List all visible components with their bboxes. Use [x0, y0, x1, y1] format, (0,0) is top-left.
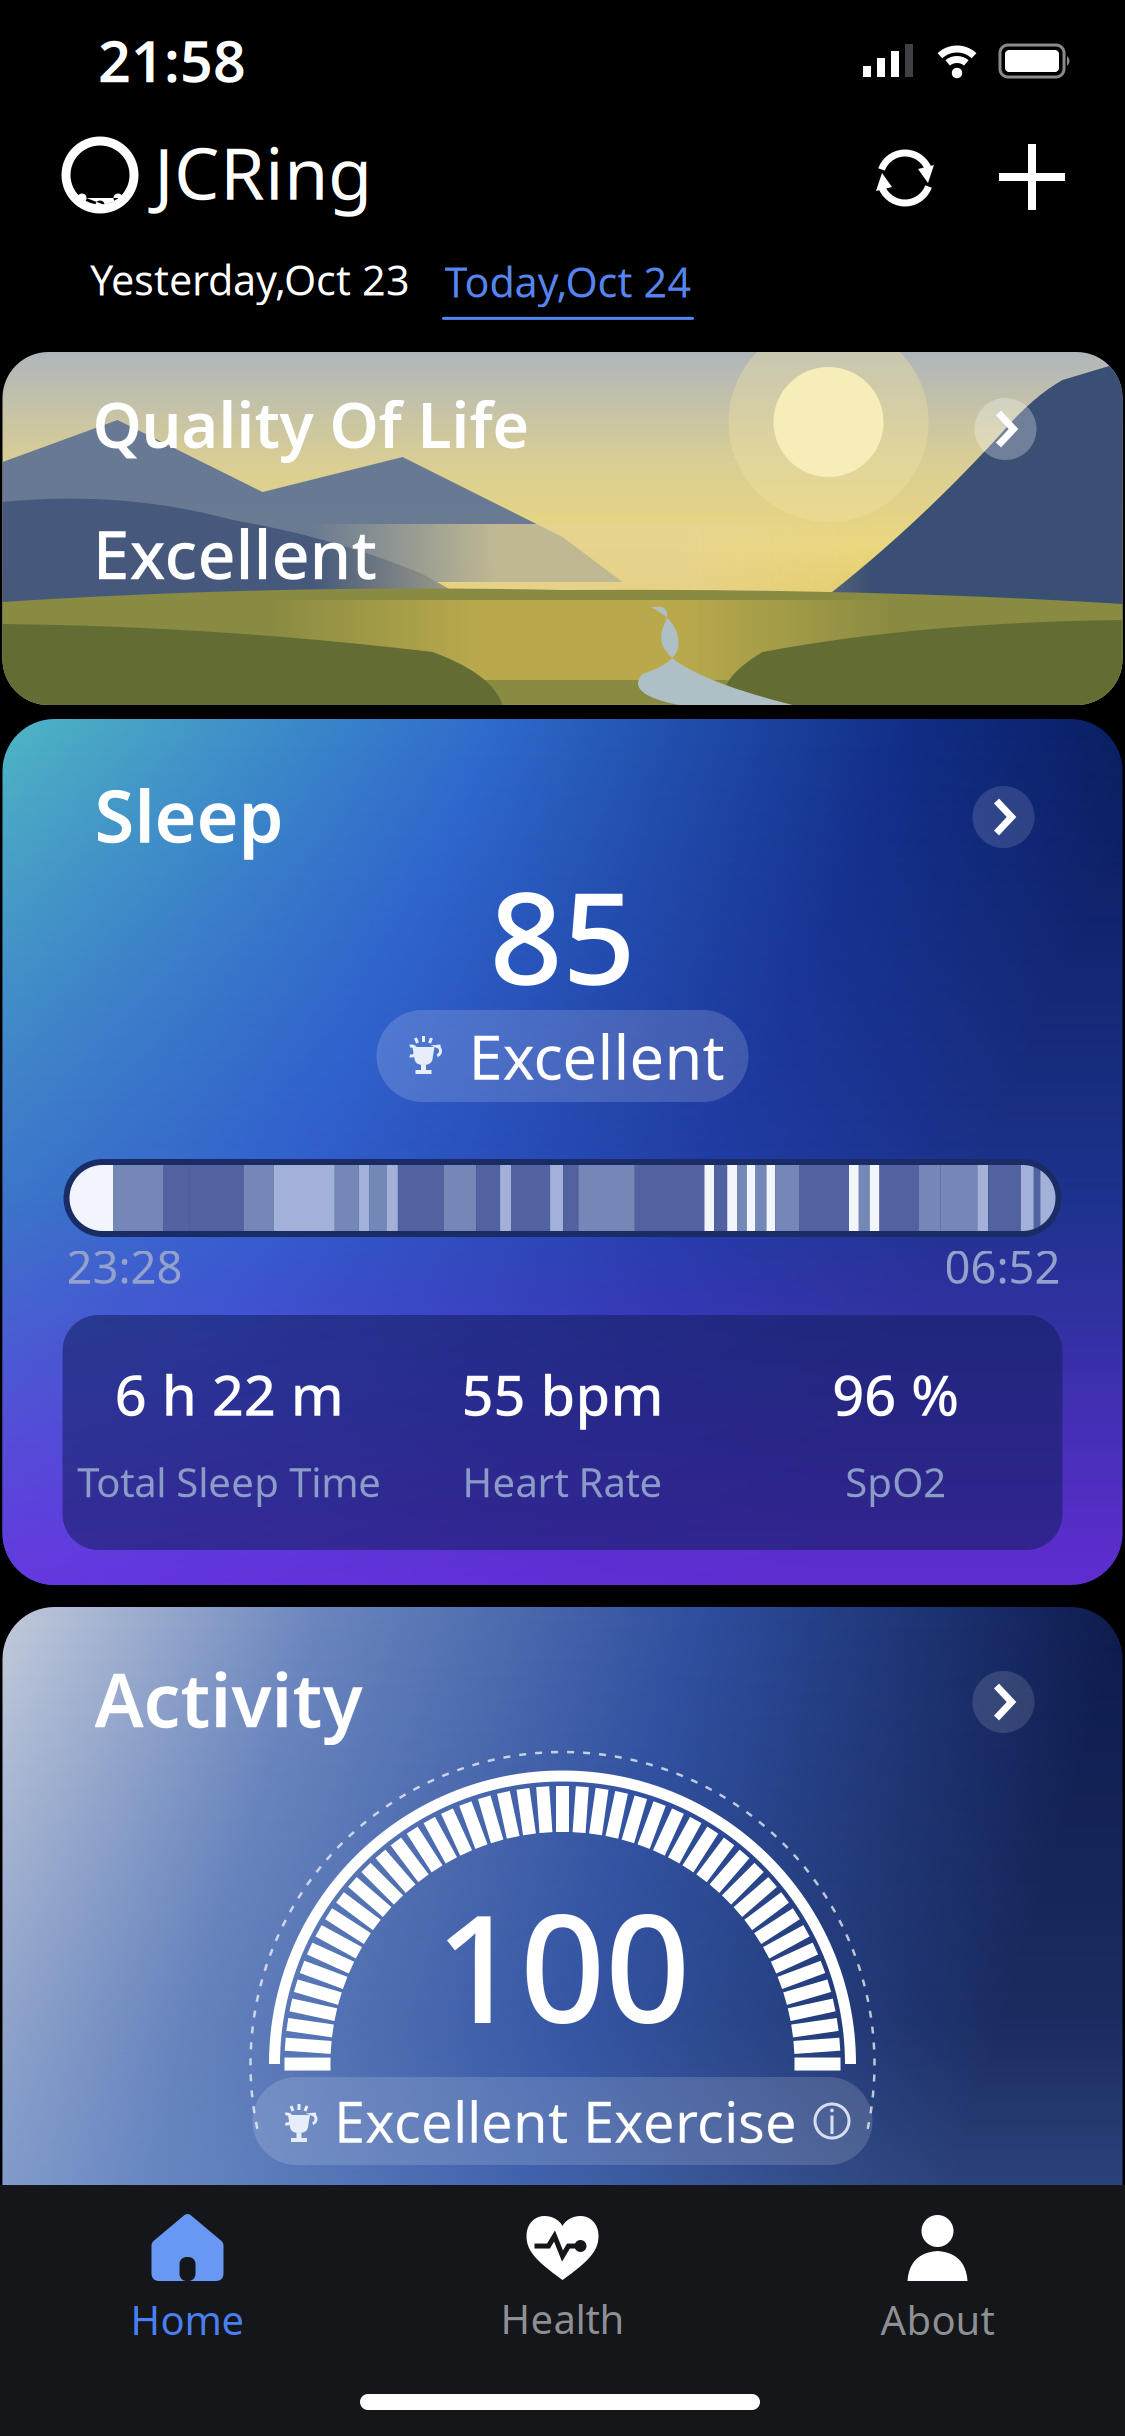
staticText: Total Sleep Time: [77, 1455, 381, 1508]
button[interactable]: Add device: [999, 144, 1065, 210]
staticText: Excellent: [468, 1015, 724, 1097]
staticText: Excellent Exercise: [334, 2084, 797, 2158]
staticText: i: [827, 2098, 836, 2144]
staticText: 6 h 22 m: [115, 1357, 344, 1431]
button[interactable]: Activity: [2, 1607, 1122, 2436]
button[interactable]: Health: [375, 2216, 750, 2345]
staticText: Quality Of Life: [92, 382, 529, 465]
staticText: Home: [130, 2293, 244, 2346]
button[interactable]: Sync: [876, 149, 934, 207]
button[interactable]: Details: [972, 1671, 1034, 1733]
staticText: JCRing: [154, 124, 372, 220]
staticText: 23:28: [66, 1236, 182, 1296]
button[interactable]: Today,Oct 24: [442, 254, 694, 320]
staticText: SpO2: [845, 1455, 946, 1508]
staticText: 06:52: [944, 1236, 1060, 1296]
staticText: 21:58: [98, 22, 246, 98]
button[interactable]: Yesterday,Oct 23: [90, 252, 410, 307]
staticText: Activity: [94, 1650, 362, 1747]
staticText: About: [880, 2293, 994, 2346]
staticText: Heart Rate: [462, 1455, 662, 1508]
staticText: 96 %: [832, 1357, 959, 1431]
button[interactable]: Sleep: [2, 719, 1122, 1585]
staticText: 100: [435, 1866, 690, 2064]
button[interactable]: About: [750, 2215, 1125, 2346]
staticText: Yesterday,Oct 23: [90, 252, 410, 307]
staticText: Today,Oct 24: [444, 254, 691, 309]
staticText: Sleep: [94, 767, 283, 863]
staticText: Health: [500, 2292, 624, 2345]
staticText: 55 bpm: [461, 1357, 663, 1431]
button[interactable]: Home: [0, 2215, 375, 2346]
staticText: Excellent: [92, 509, 377, 597]
button[interactable]: Details: [972, 786, 1034, 848]
button[interactable]: Details: [974, 398, 1036, 460]
button[interactable]: Quality Of Life: [2, 352, 1122, 705]
staticText: 85: [489, 850, 635, 1020]
